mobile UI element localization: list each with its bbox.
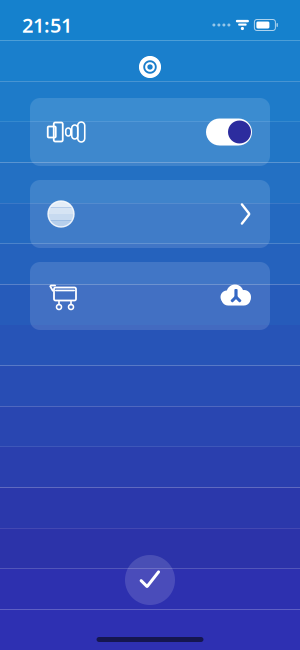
button[interactable]: Sound [30,98,270,166]
button[interactable]: Confirm [125,555,175,605]
button[interactable]: Cart download [30,262,270,330]
staticText: 21:51 [22,12,72,38]
button[interactable]: Profile [30,180,270,248]
